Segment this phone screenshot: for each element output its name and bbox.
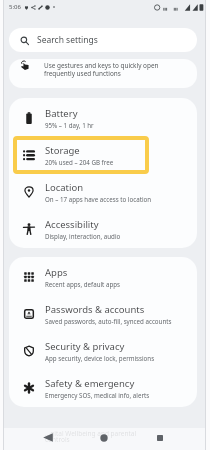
staticText: Recent apps, default apps xyxy=(45,280,120,288)
button[interactable]: Apps xyxy=(9,258,197,295)
button[interactable]: Back xyxy=(39,429,56,446)
staticText: Search settings xyxy=(37,34,98,46)
button[interactable]: Recent apps xyxy=(151,429,168,446)
staticText: 20% used – 204 GB free xyxy=(45,158,114,166)
button[interactable]: Home xyxy=(95,429,112,446)
staticText: Use gestures and keys to quickly open fr… xyxy=(44,61,159,78)
button[interactable]: Battery xyxy=(9,99,197,136)
staticText: On – 17 apps have access to location xyxy=(45,195,152,203)
staticText: Accessibility xyxy=(45,218,99,231)
button[interactable]: Safety & emergency xyxy=(9,369,197,406)
staticText: App security, device lock, permissions xyxy=(45,354,155,362)
staticText: Location xyxy=(45,181,84,194)
button[interactable]: Storage xyxy=(9,136,197,173)
button[interactable]: Use gestures and keys to quickly open fr… xyxy=(9,59,197,88)
staticText: Battery xyxy=(45,107,78,120)
button[interactable]: Accessibility xyxy=(9,210,197,247)
staticText: 95% – 1 day, 1 hr xyxy=(45,121,94,129)
staticText: Storage xyxy=(45,144,80,157)
staticText: Apps xyxy=(45,266,68,279)
staticText: Passwords & accounts xyxy=(45,303,145,316)
button[interactable]: Passwords & accounts xyxy=(9,295,197,332)
staticText: Display, interaction, audio xyxy=(45,232,121,240)
button[interactable]: Security & privacy xyxy=(9,332,197,369)
button[interactable]: Search settings xyxy=(9,28,197,52)
button[interactable]: Location xyxy=(9,173,197,210)
staticText: Emergency SOS, medical info, alerts xyxy=(45,391,150,399)
staticText: ...gital Wellbeing and parental controls xyxy=(45,429,137,444)
staticText: Safety & emergency xyxy=(45,377,135,390)
staticText: Saved passwords, auto-fill, synced accou… xyxy=(45,317,172,325)
staticText: Security & privacy xyxy=(45,340,125,353)
staticText: 5:06 xyxy=(9,3,21,11)
